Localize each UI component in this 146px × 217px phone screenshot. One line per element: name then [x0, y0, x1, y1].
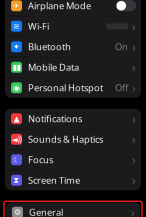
- button[interactable]: ◄)): [5, 129, 141, 149]
- staticText: Sounds & Haptics: [28, 133, 103, 145]
- staticText: ›: [132, 111, 136, 127]
- staticText: Notifications: [28, 113, 82, 125]
- button[interactable]: ☾: [5, 150, 141, 170]
- staticText: ›: [132, 80, 136, 96]
- staticText: Airplane Mode: [28, 0, 91, 12]
- staticText: Wi-Fi: [28, 20, 49, 32]
- button[interactable]: ◉: [5, 78, 141, 98]
- staticText: ☾: [13, 155, 20, 164]
- staticText: Off: [115, 82, 128, 94]
- staticText: ›: [132, 152, 136, 168]
- staticText: ≋: [13, 22, 20, 31]
- staticText: General: [29, 206, 63, 217]
- staticText: ◄)): [11, 134, 21, 144]
- button[interactable]: ✦: [5, 37, 141, 57]
- button[interactable]: ≋: [5, 16, 141, 36]
- button[interactable]: ▲: [5, 109, 141, 129]
- staticText: ▲: [13, 114, 19, 123]
- staticText: ›: [132, 18, 136, 34]
- staticText: ›: [132, 59, 136, 75]
- button[interactable]: ✈: [5, 0, 141, 16]
- staticText: ›: [132, 172, 136, 188]
- staticText: Bluetooth: [28, 41, 71, 53]
- staticText: ⧗: [13, 176, 19, 184]
- button[interactable]: ⚙: [6, 202, 140, 217]
- staticText: ✈: [13, 1, 20, 10]
- staticText: On: [115, 41, 128, 53]
- staticText: ›: [131, 204, 135, 217]
- staticText: ›: [132, 39, 136, 55]
- staticText: ›: [132, 131, 136, 147]
- staticText: Mobile Data: [28, 61, 79, 73]
- staticText: ✦: [13, 42, 20, 51]
- button[interactable]: ⧗: [5, 170, 141, 190]
- staticText: ⚙: [14, 208, 21, 217]
- button[interactable]: ▮▮: [5, 57, 141, 77]
- staticText: ▮▮: [12, 63, 20, 72]
- staticText: Focus: [28, 154, 53, 166]
- staticText: Screen Time: [28, 174, 80, 186]
- staticText: ◉: [13, 83, 20, 92]
- staticText: Personal Hotspot: [28, 82, 103, 94]
